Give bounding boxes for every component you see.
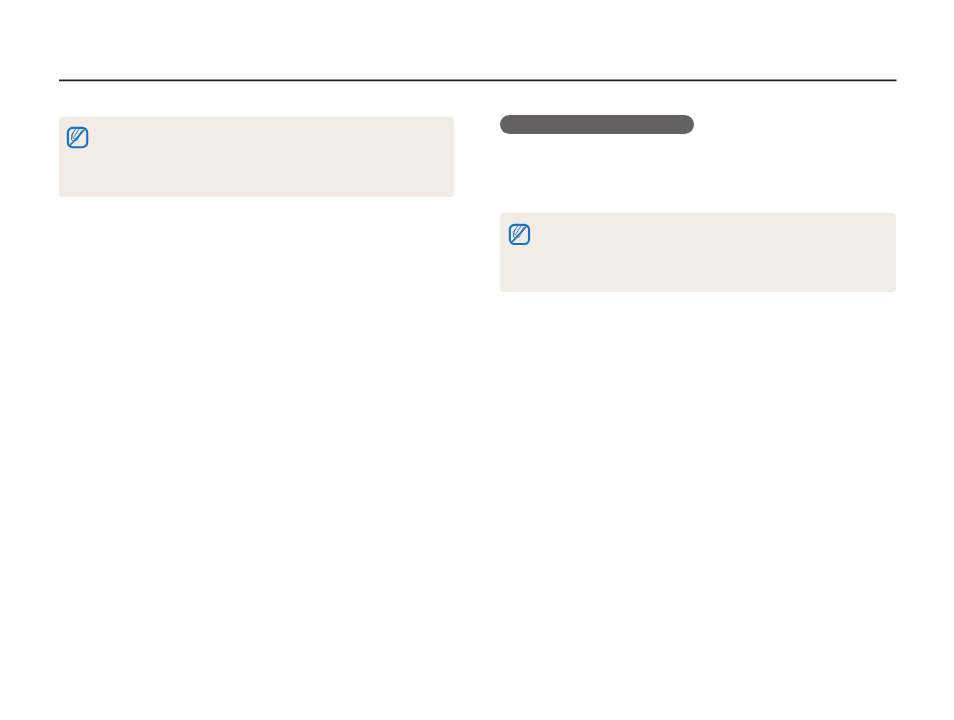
button[interactable]: Section heading	[500, 115, 694, 134]
button[interactable]: Note callout	[500, 213, 896, 292]
other: Note	[0, 0, 954, 720]
button[interactable]: Note callout	[59, 117, 454, 197]
